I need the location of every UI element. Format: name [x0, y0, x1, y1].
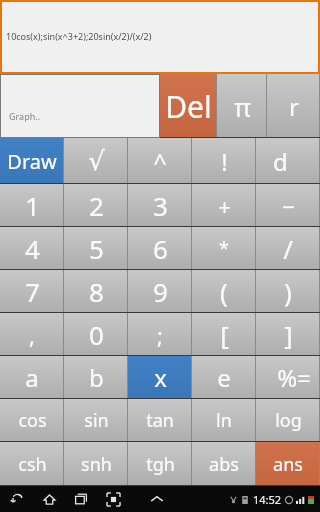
staticText: x: [154, 361, 167, 394]
staticText: 1: [25, 188, 40, 223]
button[interactable]: +: [192, 184, 256, 227]
staticText: cos: [18, 408, 47, 433]
button[interactable]: ]: [256, 313, 320, 356]
staticText: snh: [81, 452, 112, 477]
button[interactable]: 6: [128, 227, 192, 270]
button[interactable]: r: [267, 74, 320, 138]
button[interactable]: abs: [192, 442, 256, 486]
staticText: r: [289, 90, 299, 123]
staticText: abs: [209, 452, 239, 477]
button[interactable]: Expand: [148, 490, 166, 508]
button[interactable]: x: [128, 356, 192, 399]
staticText: 4: [25, 231, 40, 266]
button[interactable]: tan: [128, 399, 192, 442]
button[interactable]: %=: [256, 356, 320, 399]
button[interactable]: Recents: [72, 490, 90, 508]
button[interactable]: 1: [0, 184, 64, 227]
button[interactable]: a: [0, 356, 64, 399]
button[interactable]: 0: [64, 313, 128, 356]
button[interactable]: b: [64, 356, 128, 399]
staticText: a: [25, 361, 39, 394]
button[interactable]: [: [192, 313, 256, 356]
button[interactable]: e: [192, 356, 256, 399]
staticText: %=: [277, 361, 311, 394]
staticText: ;: [157, 320, 163, 350]
staticText: 14:52: [253, 492, 282, 507]
button[interactable]: ;: [128, 313, 192, 356]
staticText: Draw: [7, 148, 57, 175]
staticText: /: [283, 231, 293, 266]
button[interactable]: ,: [0, 313, 64, 356]
button[interactable]: d: [256, 138, 320, 184]
button[interactable]: tgh: [128, 442, 192, 486]
staticText: Graph..: [9, 110, 41, 122]
button[interactable]: cos: [0, 399, 64, 442]
staticText: tan: [146, 408, 174, 433]
staticText: ln: [216, 408, 232, 433]
button[interactable]: sin: [64, 399, 128, 442]
button[interactable]: csh: [0, 442, 64, 486]
staticText: sin: [84, 408, 109, 433]
button[interactable]: /: [256, 227, 320, 270]
button[interactable]: −: [256, 184, 320, 227]
button[interactable]: 2: [64, 184, 128, 227]
button[interactable]: Back: [8, 490, 26, 508]
staticText: *: [219, 236, 229, 261]
staticText: 8: [89, 274, 104, 309]
button[interactable]: ans: [256, 442, 320, 486]
button[interactable]: 8: [64, 270, 128, 313]
button[interactable]: log: [256, 399, 320, 442]
staticText: log: [275, 408, 302, 433]
staticText: ^: [153, 145, 167, 178]
staticText: √: [88, 146, 105, 176]
staticText: b: [89, 361, 104, 394]
staticText: 6: [153, 231, 168, 266]
button[interactable]: π: [217, 74, 267, 138]
staticText: π: [234, 89, 251, 124]
button[interactable]: 4: [0, 227, 64, 270]
staticText: e: [217, 361, 231, 394]
staticText: tgh: [146, 452, 175, 477]
staticText: +: [218, 191, 231, 221]
staticText: Del: [165, 86, 212, 127]
staticText: 0: [89, 317, 104, 352]
staticText: d: [273, 145, 288, 178]
staticText: ans: [273, 452, 303, 477]
staticText: ): [284, 274, 292, 309]
staticText: −: [282, 191, 295, 221]
button[interactable]: (: [192, 270, 256, 313]
staticText: 9: [153, 274, 168, 309]
staticText: ,: [29, 320, 35, 350]
staticText: 5: [89, 231, 104, 266]
button[interactable]: snh: [64, 442, 128, 486]
staticText: !: [221, 145, 228, 178]
button[interactable]: 5: [64, 227, 128, 270]
button[interactable]: *: [192, 227, 256, 270]
staticText: 2: [89, 188, 104, 223]
staticText: ]: [284, 317, 293, 352]
button[interactable]: √: [64, 138, 128, 184]
staticText: 7: [25, 274, 40, 309]
button[interactable]: ln: [192, 399, 256, 442]
button[interactable]: ): [256, 270, 320, 313]
button[interactable]: Del: [160, 74, 217, 138]
button[interactable]: 7: [0, 270, 64, 313]
button[interactable]: 9: [128, 270, 192, 313]
staticText: (: [220, 274, 228, 309]
staticText: 3: [153, 188, 168, 223]
button[interactable]: Graph..: [1, 75, 159, 137]
button[interactable]: Home: [40, 490, 58, 508]
button[interactable]: ^: [128, 138, 192, 184]
button[interactable]: Screenshot: [104, 490, 122, 508]
button[interactable]: !: [192, 138, 256, 184]
staticText: [: [220, 317, 229, 352]
button[interactable]: 3: [128, 184, 192, 227]
staticText: csh: [18, 452, 47, 477]
staticText: 10cos(x);sin(x^3+2);20sin(x/2)/(x/2): [6, 30, 152, 42]
button[interactable]: Draw: [0, 138, 64, 184]
